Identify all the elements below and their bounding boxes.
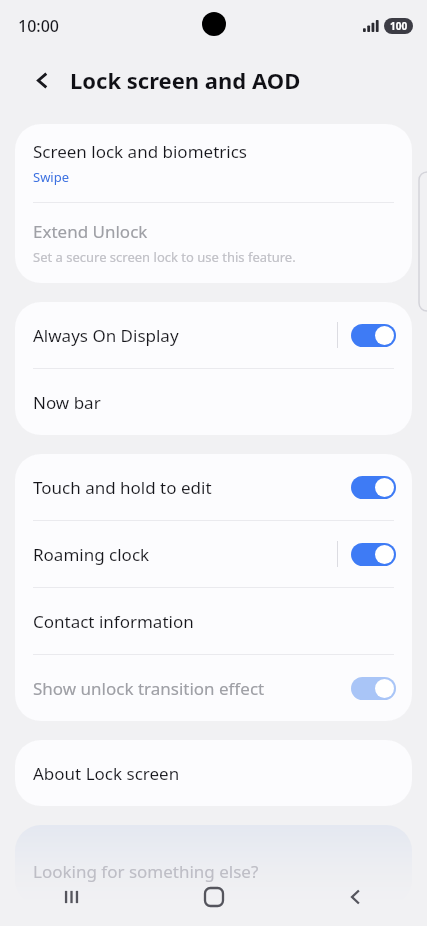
button[interactable]: About Lock screen xyxy=(15,740,412,806)
button[interactable]: Touch and hold to edit xyxy=(15,454,412,520)
staticText: Contact information xyxy=(33,610,194,633)
button[interactable]: Roaming clock toggle xyxy=(351,543,396,566)
staticText: Touch and hold to edit xyxy=(33,476,351,499)
staticText: Screen lock and biometrics xyxy=(33,140,247,163)
staticText: Set a secure screen lock to use this fea… xyxy=(33,248,296,266)
button[interactable]: Back xyxy=(28,66,56,94)
staticText: 100 xyxy=(390,19,408,33)
button[interactable]: Always On Display xyxy=(15,302,412,368)
staticText: Lock screen and AOD xyxy=(70,65,301,95)
staticText: Now bar xyxy=(33,391,101,414)
staticText: Looking for something else? xyxy=(33,860,259,883)
button[interactable]: Always On Display toggle xyxy=(351,324,396,347)
staticText: About Lock screen xyxy=(33,762,180,785)
staticText: Always On Display xyxy=(33,324,337,347)
button[interactable]: Show unlock transition effect xyxy=(15,655,412,721)
button[interactable]: Touch and hold to edit toggle xyxy=(351,476,396,499)
button[interactable]: Home xyxy=(143,868,285,926)
button[interactable]: Show unlock transition effect toggle xyxy=(351,677,396,700)
button[interactable]: Looking for something else? xyxy=(15,825,412,905)
staticText: Extend Unlock xyxy=(33,220,148,243)
staticText: Roaming clock xyxy=(33,543,337,566)
button[interactable]: Back xyxy=(285,868,427,926)
staticText: Swipe xyxy=(33,168,70,186)
button[interactable]: Roaming clock xyxy=(15,521,412,587)
staticText: Show unlock transition effect xyxy=(33,677,351,700)
button[interactable]: Contact information xyxy=(15,588,412,654)
button[interactable]: Now bar xyxy=(15,369,412,435)
button[interactable]: Screen lock and biometrics xyxy=(15,124,412,202)
button[interactable]: Extend Unlock xyxy=(15,203,412,283)
staticText: 10:00 xyxy=(18,15,59,37)
button[interactable]: Recents xyxy=(0,868,143,926)
